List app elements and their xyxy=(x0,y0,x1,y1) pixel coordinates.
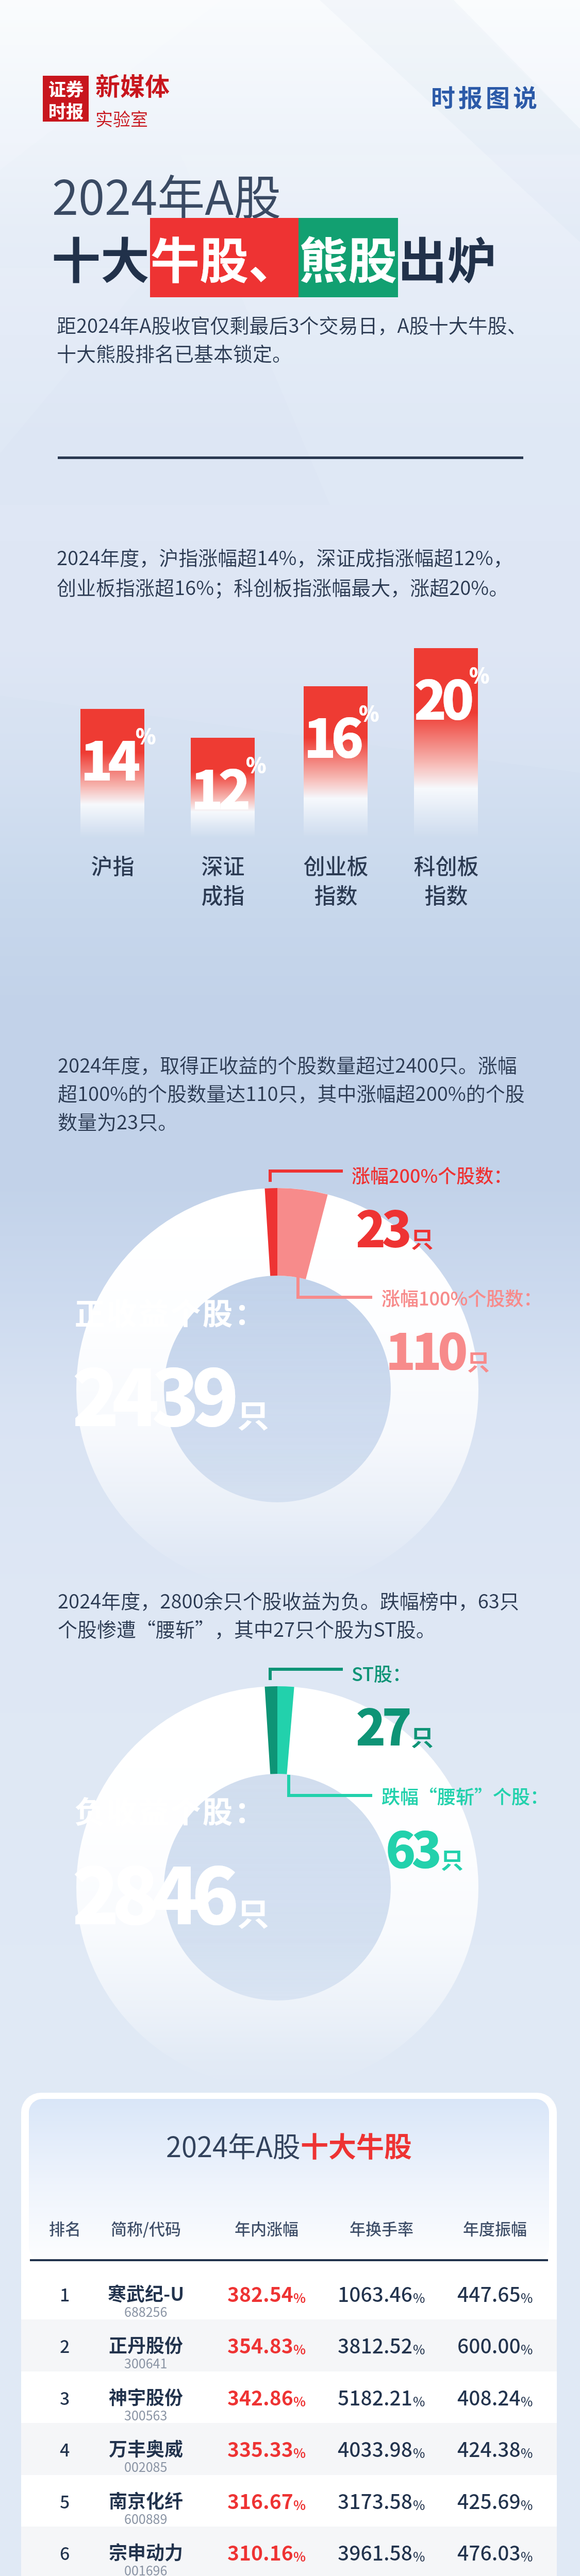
staticText: 476.03 xyxy=(457,2537,521,2566)
staticText: 宗申动力 xyxy=(109,2538,184,2565)
staticText: 354.83 xyxy=(227,2330,293,2359)
staticText: 63 xyxy=(386,1811,438,1883)
staticText: 2 xyxy=(60,2333,70,2358)
staticText: 310.16 xyxy=(227,2537,293,2566)
staticText: 只 xyxy=(237,1889,270,1935)
staticText: 16 xyxy=(304,696,359,773)
staticText: 1063.46 xyxy=(338,2279,413,2308)
staticText: % xyxy=(413,2495,425,2514)
staticText: 负收益个股： xyxy=(75,1788,267,1832)
staticText: 688256 xyxy=(124,2302,168,2320)
staticText: % xyxy=(413,2392,425,2410)
staticText: 正丹股份 xyxy=(109,2331,184,2358)
staticText: 时报图说 xyxy=(431,78,540,113)
staticText: % xyxy=(521,2288,533,2307)
staticText: % xyxy=(521,2495,533,2514)
staticText: % xyxy=(293,2392,306,2410)
staticText: 316.67 xyxy=(227,2486,293,2515)
staticText: 300563 xyxy=(124,2405,168,2424)
staticText: 002085 xyxy=(124,2457,168,2476)
staticText: 跌幅“腰斩”个股： xyxy=(382,1782,549,1809)
staticText: 2024年A股 xyxy=(52,160,281,228)
staticText: % xyxy=(521,2547,533,2565)
staticText: 382.54 xyxy=(227,2279,293,2308)
staticText: 3173.58 xyxy=(338,2486,413,2515)
staticText: % xyxy=(413,2340,425,2358)
staticText: 5 xyxy=(60,2488,70,2514)
staticText: 2024年A股 xyxy=(166,2125,301,2165)
staticText: % xyxy=(521,2443,533,2462)
staticText: 342.86 xyxy=(227,2382,293,2411)
staticText: % xyxy=(293,2547,306,2565)
staticText: 3812.52 xyxy=(338,2330,413,2359)
staticText: 20 xyxy=(414,657,469,735)
staticText: 创业板 指数 xyxy=(303,849,369,910)
staticText: 2024年度，2800余只个股收益为负。跌幅榜中，63只 个股惨遭“腰斩”，其中… xyxy=(58,1586,519,1642)
staticText: 4 xyxy=(60,2436,70,2462)
staticText: 14 xyxy=(80,718,136,796)
staticText: 424.38 xyxy=(457,2434,521,2463)
staticText: 12 xyxy=(191,747,246,825)
staticText: 年内涨幅 xyxy=(235,2216,299,2240)
staticText: 1 xyxy=(60,2281,70,2307)
staticText: 447.65 xyxy=(457,2279,521,2308)
staticText: 2439 xyxy=(72,1336,232,1448)
staticText: % xyxy=(293,2443,306,2462)
staticText: % xyxy=(293,2288,306,2307)
staticText: 寒武纪-U xyxy=(108,2279,185,2306)
staticText: 证券 时报 xyxy=(48,76,84,122)
staticText: % xyxy=(521,2340,533,2358)
staticText: 年换手率 xyxy=(350,2216,413,2240)
staticText: 科创板 指数 xyxy=(413,849,479,910)
staticText: 600.00 xyxy=(457,2330,521,2359)
staticText: % xyxy=(521,2392,533,2410)
staticText: % xyxy=(136,720,144,750)
staticText: % xyxy=(293,2495,306,2514)
staticText: % xyxy=(413,2288,425,2307)
staticText: 正收益个股： xyxy=(75,1290,267,1333)
staticText: 只 xyxy=(411,1720,434,1753)
staticText: 出炉 xyxy=(398,222,496,293)
staticText: 只 xyxy=(467,1344,490,1377)
staticText: 335.33 xyxy=(227,2434,293,2463)
staticText: 熊股 xyxy=(299,222,397,293)
staticText: 600889 xyxy=(124,2509,168,2528)
staticText: 只 xyxy=(441,1842,463,1875)
staticText: ST股： xyxy=(352,1659,411,1686)
staticText: 万丰奥威 xyxy=(109,2434,184,2461)
staticText: % xyxy=(413,2547,425,2565)
staticText: % xyxy=(469,659,478,689)
staticText: 6 xyxy=(60,2540,70,2565)
staticText: 2024年度，取得正收益的个股数量超过2400只。涨幅 超100%的个股数量达1… xyxy=(58,1050,525,1135)
staticText: % xyxy=(359,698,368,727)
staticText: 408.24 xyxy=(457,2382,521,2411)
staticText: 十大 xyxy=(52,222,150,293)
staticText: 5182.21 xyxy=(338,2382,413,2411)
staticText: 只 xyxy=(237,1391,270,1437)
staticText: 南京化纤 xyxy=(109,2486,184,2513)
staticText: 神宇股份 xyxy=(109,2383,184,2410)
staticText: 新媒体 xyxy=(95,66,170,103)
staticText: 十大牛股 xyxy=(301,2125,412,2165)
staticText: 排名 xyxy=(49,2216,81,2240)
staticText: 001696 xyxy=(124,2561,168,2576)
staticText: 简称/代码 xyxy=(111,2216,181,2240)
staticText: 牛股、 xyxy=(151,222,298,293)
staticText: 425.69 xyxy=(457,2486,521,2515)
staticText: 涨幅100%个股数： xyxy=(382,1284,542,1311)
staticText: 距2024年A股收官仅剩最后3个交易日，A股十大牛股、 十大熊股排名已基本锁定。 xyxy=(57,310,527,367)
staticText: 沪指 xyxy=(91,849,135,880)
staticText: 23 xyxy=(356,1190,408,1262)
staticText: 年度振幅 xyxy=(463,2216,527,2240)
staticText: % xyxy=(293,2340,306,2358)
staticText: 2024年度，沪指涨幅超14%，深证成指涨幅超12%， 创业板指涨超16%；科创… xyxy=(57,543,513,601)
staticText: 2846 xyxy=(72,1835,232,1946)
staticText: 110 xyxy=(386,1313,464,1384)
staticText: 涨幅200%个股数： xyxy=(352,1161,512,1188)
staticText: % xyxy=(413,2443,425,2462)
staticText: 深证 成指 xyxy=(201,849,245,910)
staticText: 实验室 xyxy=(95,106,148,131)
staticText: 只 xyxy=(411,1222,434,1255)
staticText: 4033.98 xyxy=(338,2434,413,2463)
staticText: % xyxy=(246,749,255,779)
